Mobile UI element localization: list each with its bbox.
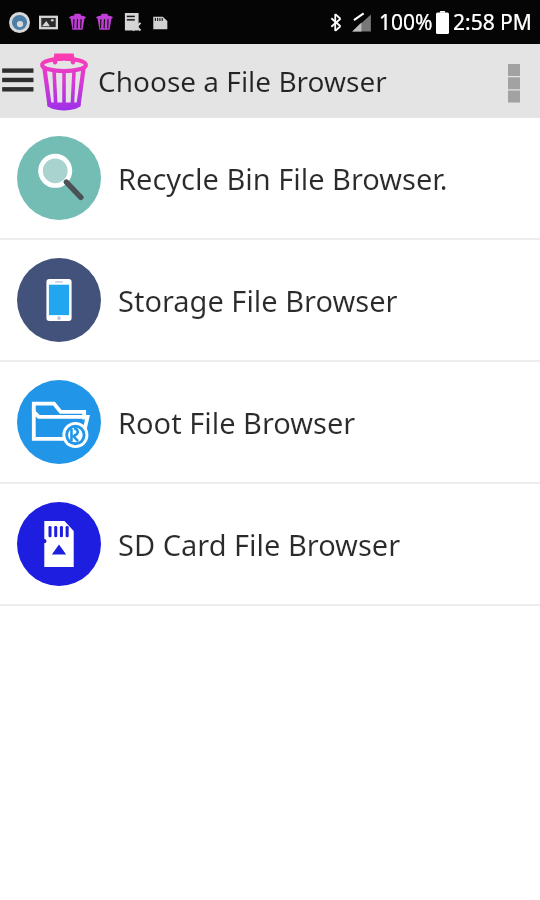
- button[interactable]: Root File Browser: [0, 362, 540, 482]
- button[interactable]: Open navigation drawer: [0, 55, 36, 107]
- staticText: Choose a File Browser: [98, 62, 387, 100]
- staticText: Recycle Bin File Browser.: [118, 159, 448, 198]
- button[interactable]: Recycle Bin File Browser.: [0, 118, 540, 238]
- button[interactable]: More options: [488, 50, 540, 112]
- staticText: 2:58 PM: [453, 8, 532, 37]
- staticText: 100%: [379, 8, 433, 37]
- staticText: Storage File Browser: [118, 281, 398, 320]
- button[interactable]: SD Card File Browser: [0, 484, 540, 604]
- button[interactable]: Storage File Browser: [0, 240, 540, 360]
- staticText: Root File Browser: [118, 403, 356, 442]
- staticText: SD Card File Browser: [118, 525, 401, 564]
